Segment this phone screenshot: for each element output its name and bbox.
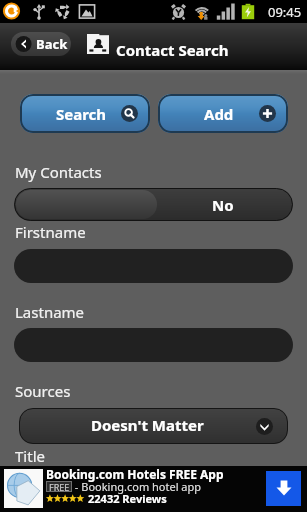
staticText: No — [212, 195, 234, 215]
button[interactable]: Back — [11, 32, 71, 56]
staticText: - Booking.com hotel app — [72, 479, 202, 494]
staticText: Contact Search — [116, 40, 229, 60]
button[interactable]: No — [14, 188, 293, 221]
staticText: My Contacts — [15, 162, 102, 182]
staticText: Add — [204, 104, 234, 124]
staticText: Lastname — [15, 302, 85, 322]
button[interactable] — [14, 328, 293, 362]
button[interactable]: Doesn't Matter — [19, 408, 288, 444]
staticText: Doesn't Matter — [91, 415, 204, 435]
staticText: 22432 Reviews — [88, 491, 167, 506]
staticText: Sources — [15, 381, 71, 401]
staticText: 09:45 — [268, 3, 302, 21]
staticText: Title — [15, 446, 45, 466]
staticText: Booking.com Hotels FREE App — [46, 466, 224, 482]
staticText: Firstname — [15, 222, 86, 242]
button[interactable] — [14, 249, 293, 283]
button[interactable]: Search — [20, 94, 150, 133]
button[interactable]: Booking.com Hotels FREE App — [0, 466, 307, 512]
staticText: Search — [56, 104, 107, 124]
staticText: FREE — [49, 481, 70, 492]
staticText: Back — [36, 35, 68, 53]
button[interactable]: Download app — [266, 471, 301, 506]
button[interactable]: Add — [158, 94, 288, 133]
